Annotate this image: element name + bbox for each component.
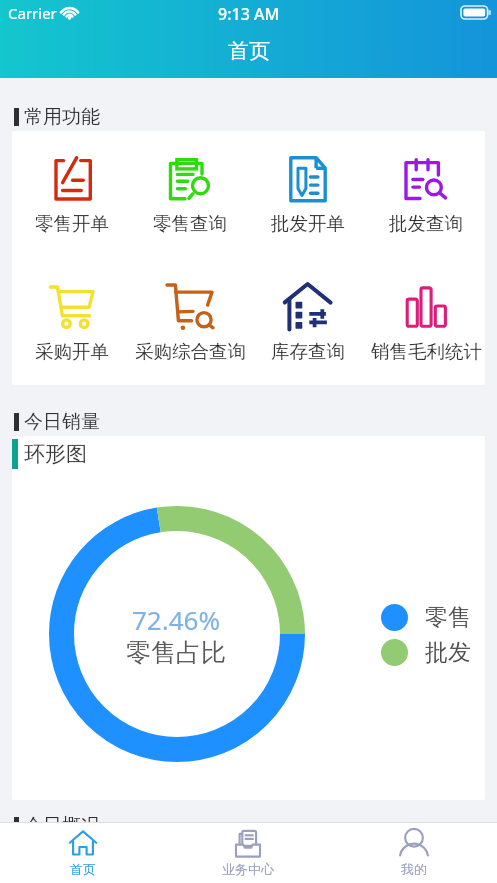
staticText: 业务中心 — [222, 861, 274, 877]
button[interactable]: 业务中心 — [165, 823, 331, 883]
staticText: 采购综合查询 — [135, 340, 246, 363]
staticText: 零售查询 — [153, 212, 227, 235]
staticText: 今日销量 — [24, 410, 100, 434]
button[interactable]: 批发开单 — [249, 131, 367, 258]
staticText: 今日概况 — [24, 814, 100, 838]
staticText: 72.46% — [132, 602, 221, 637]
staticText: 零售开单 — [35, 212, 109, 235]
button[interactable]: 零售查询 — [131, 131, 249, 258]
staticText: 批发查询 — [389, 212, 463, 235]
button[interactable]: 采购综合查询 — [131, 258, 249, 385]
staticText: 批发开单 — [271, 212, 345, 235]
staticText: 首页 — [70, 861, 96, 877]
staticText: 库存查询 — [271, 340, 345, 363]
staticText: 批发 — [425, 638, 471, 667]
button[interactable]: 销售毛利统计 — [367, 258, 485, 385]
staticText: Carrier — [8, 3, 57, 23]
button[interactable]: 批发查询 — [367, 131, 485, 258]
staticText: 9:13 AM — [218, 3, 280, 25]
button[interactable]: 我的 — [331, 823, 497, 883]
staticText: 首页 — [228, 38, 270, 64]
staticText: 采购开单 — [35, 340, 109, 363]
button[interactable]: 零售开单 — [12, 131, 131, 258]
button[interactable]: 库存查询 — [249, 258, 367, 385]
staticText: 环形图 — [24, 441, 87, 467]
staticText: 我的 — [401, 861, 427, 877]
staticText: 销售毛利统计 — [371, 340, 482, 363]
staticText: 零售占比 — [126, 637, 226, 668]
button[interactable]: 采购开单 — [12, 258, 131, 385]
staticText: 零售 — [425, 603, 471, 632]
button[interactable]: 首页 — [0, 823, 165, 883]
staticText: 常用功能 — [24, 105, 100, 129]
